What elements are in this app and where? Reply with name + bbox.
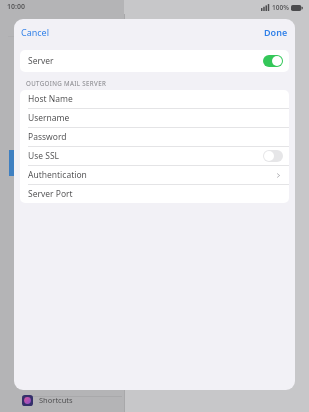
button[interactable]: Cancel: [14, 23, 57, 41]
button[interactable]: Toggle on: [263, 55, 283, 67]
staticText: Server: [28, 55, 263, 67]
staticText: Host Name: [28, 93, 283, 105]
staticText: 100%: [272, 3, 289, 12]
button[interactable]: Server: [20, 50, 289, 72]
staticText: Server Port: [28, 188, 283, 200]
button[interactable]: Authentication: [20, 166, 289, 184]
staticText: Use SSL: [28, 150, 263, 162]
button[interactable]: Toggle off: [263, 150, 283, 162]
staticText: OUTGOING MAIL SERVER: [26, 79, 107, 87]
staticText: Password: [28, 131, 283, 143]
button[interactable]: Password: [20, 128, 289, 146]
button[interactable]: Server Port: [20, 185, 289, 203]
button[interactable]: Done: [257, 23, 295, 41]
button[interactable]: Use SSL: [20, 147, 289, 165]
staticText: Authentication: [28, 169, 274, 181]
staticText: Done: [264, 26, 288, 38]
staticText: Username: [28, 112, 283, 124]
staticText: 10:00: [7, 2, 25, 12]
other: Open Authentication: [274, 171, 283, 180]
staticText: Cancel: [21, 26, 50, 38]
staticText: Shortcuts: [39, 395, 73, 405]
button[interactable]: Host Name: [20, 90, 289, 108]
button[interactable]: Username: [20, 109, 289, 127]
